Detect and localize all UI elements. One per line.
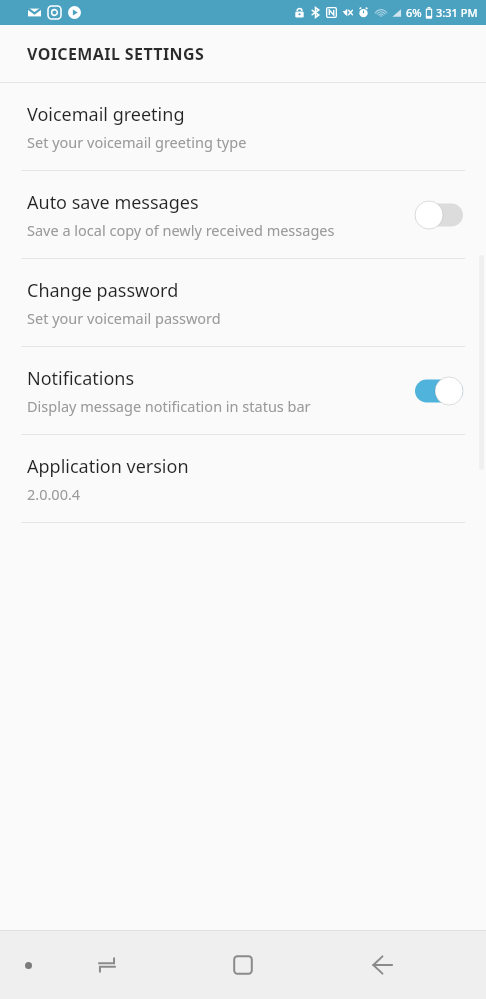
staticText: Set your voicemail greeting type xyxy=(27,132,247,152)
staticText: Application version xyxy=(27,454,189,479)
staticText: 3:31 PM xyxy=(436,5,478,20)
button[interactable]: Switch on xyxy=(413,374,465,408)
button[interactable]: Menu indicator xyxy=(14,951,42,979)
staticText: Voicemail greeting xyxy=(27,102,185,127)
button[interactable]: Notifications xyxy=(0,347,486,434)
button[interactable]: Home xyxy=(219,941,267,989)
button[interactable]: Voicemail greeting xyxy=(0,83,486,170)
button[interactable]: Back xyxy=(358,941,406,989)
staticText: Save a local copy of newly received mess… xyxy=(27,220,335,240)
staticText: Set your voicemail password xyxy=(27,308,221,328)
staticText: 2.0.00.4 xyxy=(27,484,81,504)
button[interactable]: Recents xyxy=(83,941,131,989)
button[interactable]: Application version xyxy=(0,435,486,522)
button[interactable]: Auto save messages xyxy=(0,171,486,258)
button[interactable]: Switch off xyxy=(413,198,465,232)
staticText: 6% xyxy=(406,5,422,20)
staticText: Auto save messages xyxy=(27,190,199,215)
staticText: VOICEMAIL SETTINGS xyxy=(27,43,205,65)
button[interactable]: Change password xyxy=(0,259,486,346)
staticText: Display message notification in status b… xyxy=(27,396,311,416)
staticText: Notifications xyxy=(27,366,135,391)
staticText: Change password xyxy=(27,278,179,303)
